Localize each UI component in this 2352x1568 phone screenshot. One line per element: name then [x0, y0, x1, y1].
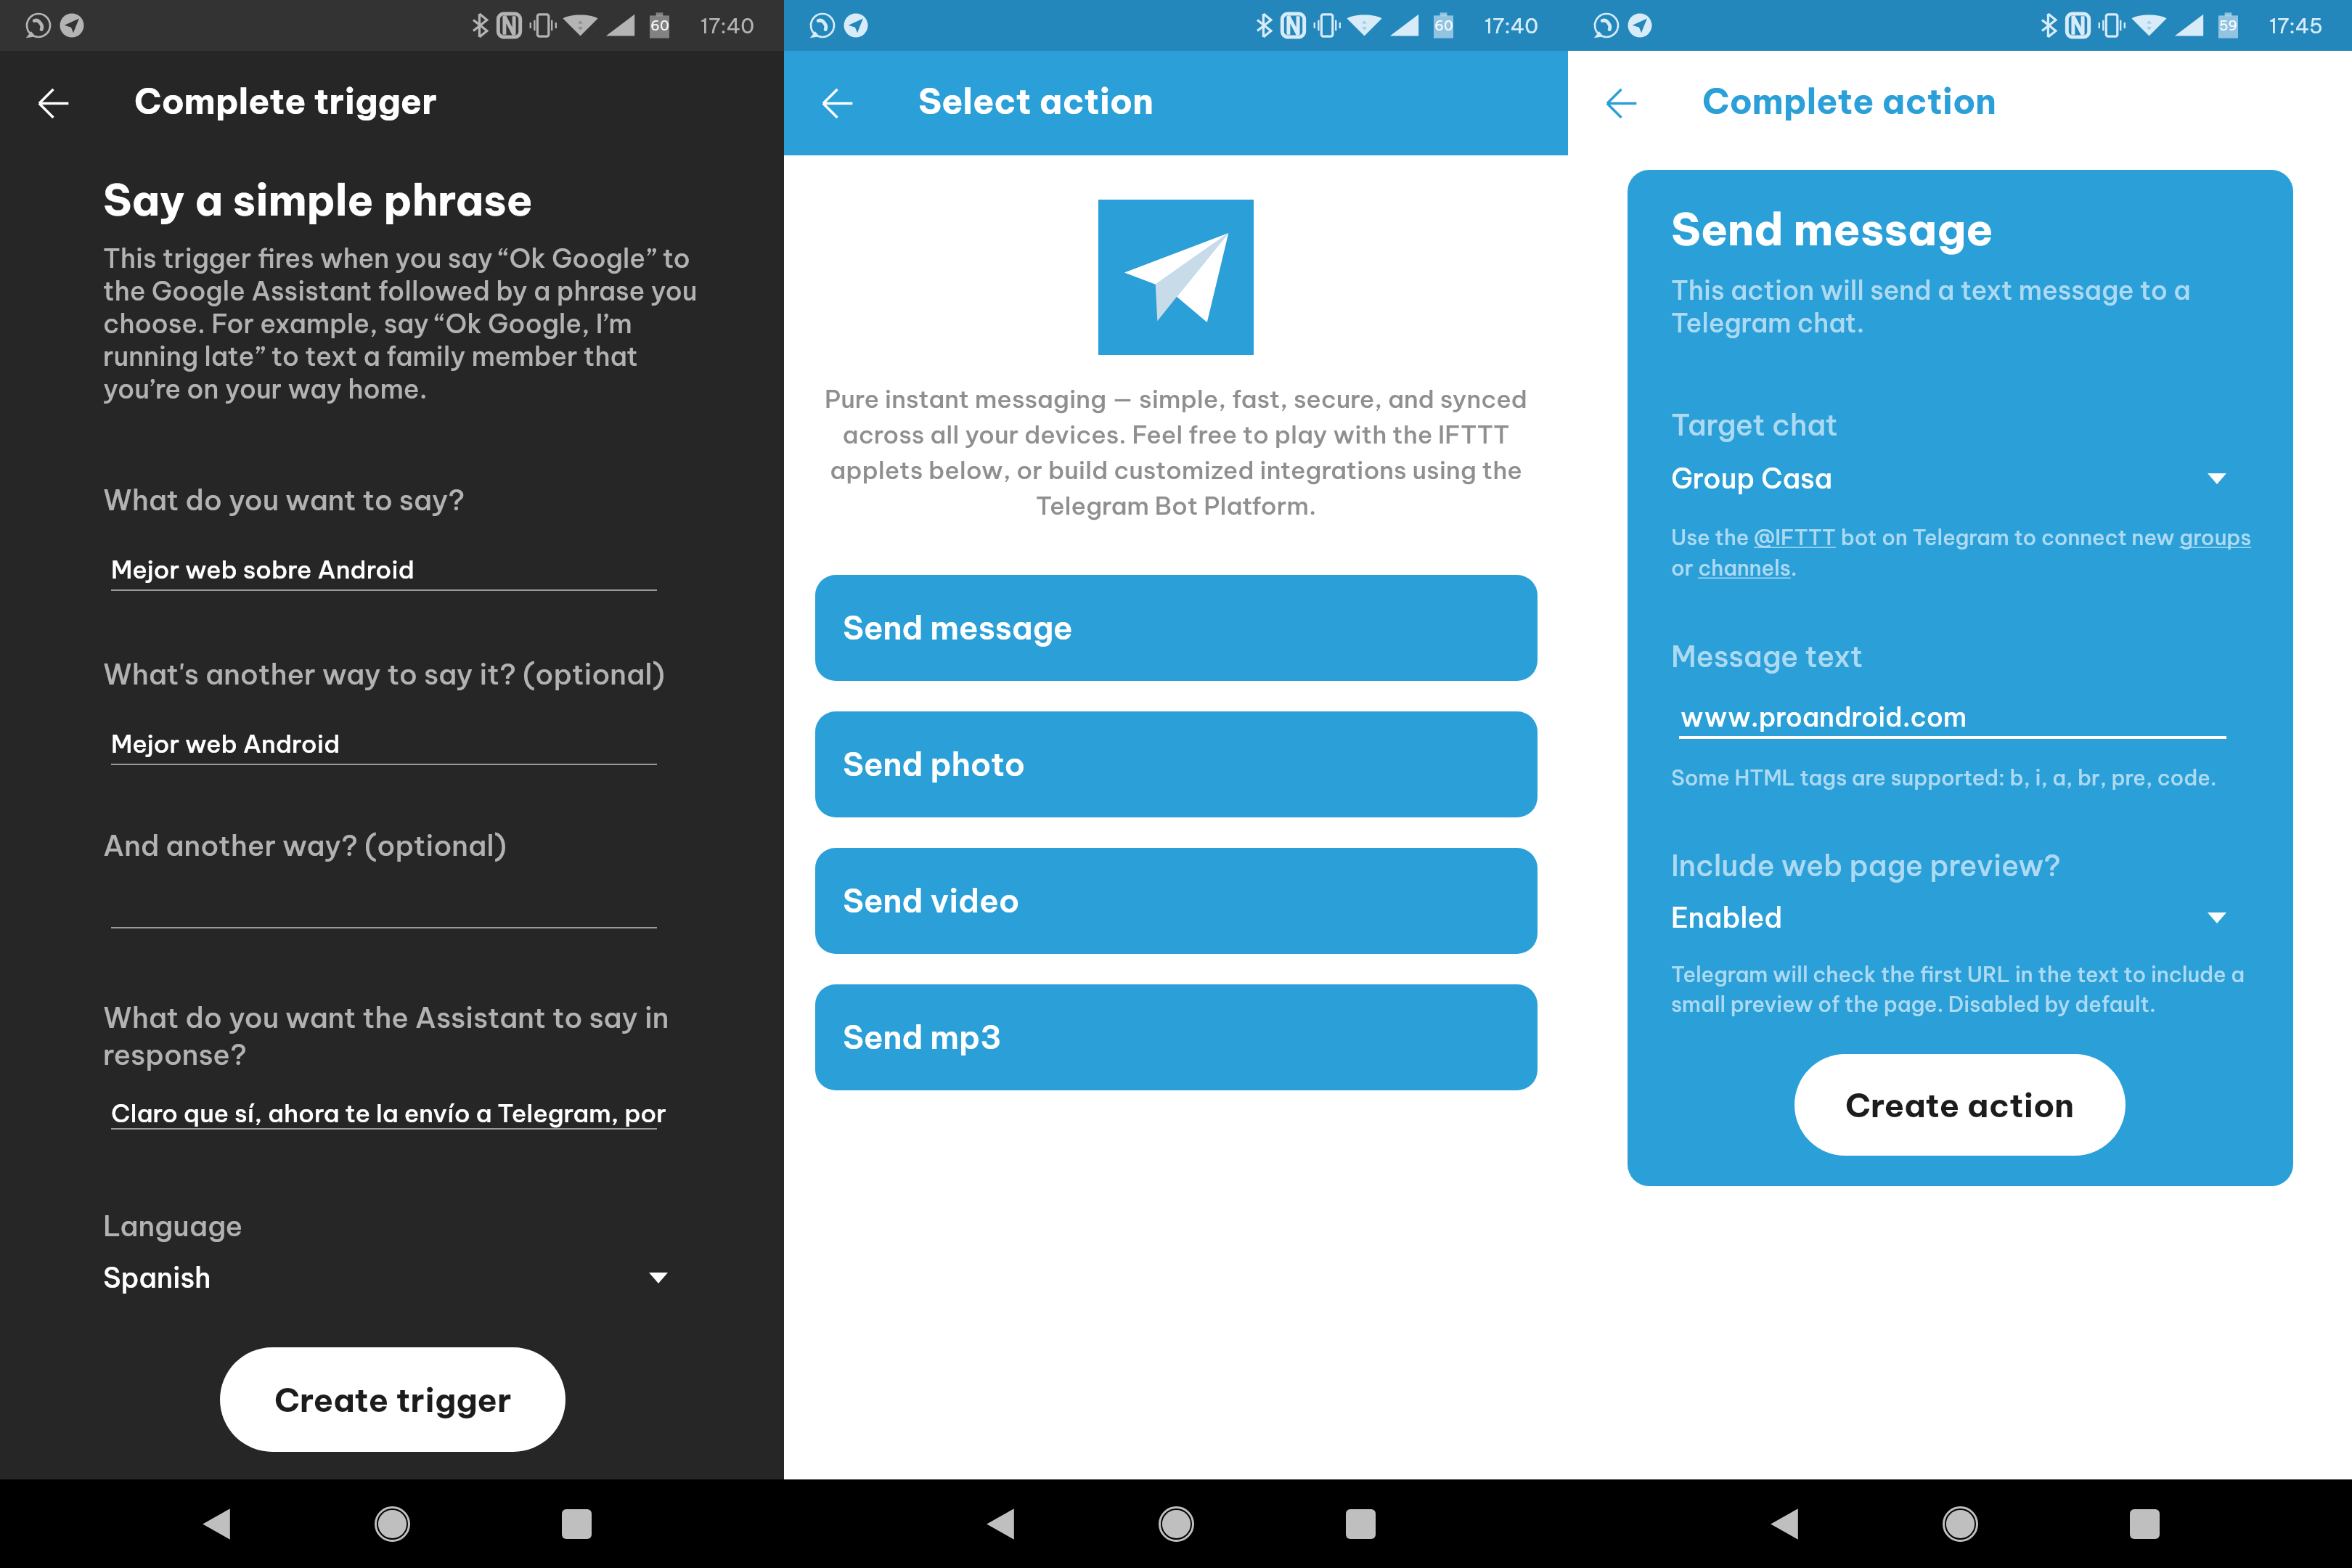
button[interactable]: Send message	[815, 575, 1538, 681]
staticText: 59	[2219, 17, 2238, 34]
staticText: Language	[103, 1208, 243, 1244]
staticText: Mejor web sobre Android	[111, 554, 674, 585]
staticText: Include web page preview?	[1671, 847, 2061, 884]
staticText: Use the @IFTTT bot on Telegram to connec…	[1671, 524, 2266, 581]
button[interactable]: Create action	[1794, 1054, 2126, 1156]
staticText: Mejor web Android	[111, 728, 674, 759]
staticText: Claro que sí, ahora te la envío a Telegr…	[111, 1098, 674, 1129]
staticText: www.proandroid.com	[1681, 701, 1967, 734]
button[interactable]: Home	[1141, 1489, 1211, 1559]
staticText: Some HTML tags are supported: b, i, a, b…	[1671, 764, 2217, 791]
button[interactable]: Recents	[1326, 1489, 1395, 1559]
button[interactable]: Enabled	[1671, 897, 2226, 938]
staticText: Select action	[918, 79, 1153, 123]
staticText: Say a simple phrase	[103, 173, 534, 227]
button[interactable]: Back	[1590, 72, 1652, 134]
staticText: Send mp3	[843, 1017, 1002, 1058]
button[interactable]: Back	[1749, 1489, 1819, 1559]
button[interactable]: Recents	[542, 1489, 611, 1559]
button[interactable]: Back	[965, 1489, 1035, 1559]
staticText: Target chat	[1671, 407, 1838, 444]
staticText: What do you want the Assistant to say in…	[103, 1000, 669, 1073]
button[interactable]: Send photo	[815, 711, 1538, 817]
staticText: Send video	[843, 881, 1020, 921]
staticText: 17:40	[1485, 13, 1539, 38]
staticText: Enabled	[1671, 900, 1783, 935]
button[interactable]: Create trigger	[220, 1347, 565, 1452]
staticText: What do you want to say?	[103, 482, 465, 518]
staticText: This trigger fires when you say “Ok Goog…	[103, 242, 698, 405]
staticText: 17:45	[2269, 13, 2323, 38]
button[interactable]: Back	[22, 72, 84, 134]
staticText: Message text	[1671, 638, 1863, 675]
button[interactable]: Back	[181, 1489, 251, 1559]
staticText: Create action	[1845, 1085, 2075, 1126]
button[interactable]: Recents	[2110, 1489, 2179, 1559]
staticText: Telegram will check the first URL in the…	[1671, 961, 2245, 1018]
button[interactable]: Send video	[815, 848, 1538, 954]
staticText: Complete action	[1702, 79, 1996, 123]
staticText: This action will send a text message to …	[1671, 274, 2191, 339]
staticText: Send photo	[843, 744, 1026, 785]
staticText: Send message	[1671, 201, 1993, 257]
staticText: 17:40	[701, 13, 755, 38]
staticText: Spanish	[103, 1260, 211, 1295]
staticText: Send message	[843, 608, 1073, 648]
button[interactable]: Spanish	[103, 1257, 668, 1299]
button[interactable]: Send mp3	[815, 984, 1538, 1090]
staticText: Pure instant messaging — simple, fast, s…	[784, 383, 1568, 521]
button[interactable]: Back	[806, 72, 868, 134]
button[interactable]: Home	[357, 1489, 427, 1559]
button[interactable]: Home	[1925, 1489, 1995, 1559]
staticText: What's another way to say it? (optional)	[103, 656, 665, 692]
button[interactable]: Group Casa	[1671, 458, 2226, 499]
staticText: Complete trigger	[134, 79, 437, 123]
staticText: 60	[1434, 17, 1453, 34]
staticText: Group Casa	[1671, 461, 1833, 496]
staticText: 60	[650, 17, 669, 34]
staticText: And another way? (optional)	[103, 828, 507, 863]
staticText: Create trigger	[274, 1379, 512, 1421]
